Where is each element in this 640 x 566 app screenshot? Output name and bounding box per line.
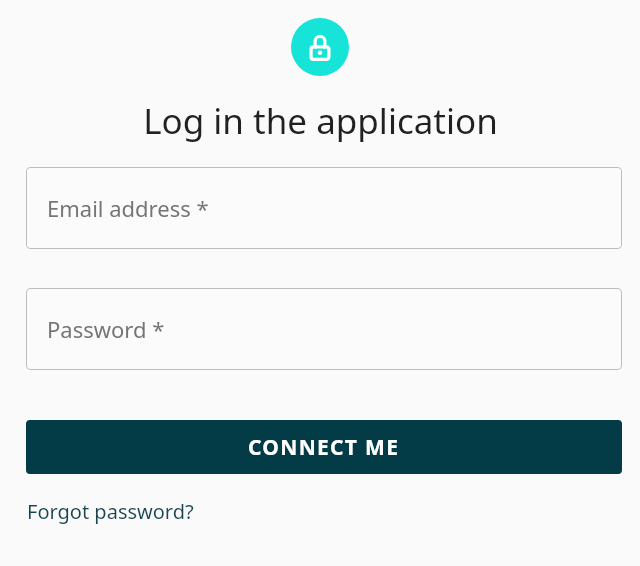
button[interactable]: CONNECT ME	[26, 420, 622, 474]
staticText: Email address *	[47, 193, 209, 223]
button[interactable]: Forgot password?	[26, 496, 195, 527]
staticText: Log in the application	[143, 97, 498, 145]
button[interactable]: Email address *	[26, 167, 622, 249]
button[interactable]: Password *	[26, 288, 622, 370]
staticText: Forgot password?	[27, 498, 194, 525]
other: Secure login	[291, 18, 349, 76]
staticText: Password *	[47, 314, 165, 344]
staticText: CONNECT ME	[248, 433, 400, 462]
